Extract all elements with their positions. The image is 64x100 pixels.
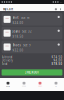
button[interactable]: CHECKOUT [2, 69, 62, 75]
staticText: Home [6, 85, 10, 87]
staticText: Size 32 [22, 30, 32, 33]
button[interactable]: Shop [16, 78, 32, 91]
staticText: Size 9 [23, 43, 31, 47]
button[interactable]: Jeans [2, 27, 62, 39]
staticText: 9:41 [59, 1, 62, 3]
button[interactable]: Me [48, 78, 64, 91]
staticText: Jeans [13, 30, 20, 33]
button[interactable]: Cart [32, 78, 48, 91]
staticText: Me [55, 85, 57, 87]
staticText: My Cart [3, 7, 13, 11]
staticText: Delivery [2, 59, 13, 62]
staticText: $78.50 [51, 62, 62, 66]
button[interactable]: Shirt [2, 13, 62, 26]
staticText: $18.50 [13, 35, 24, 38]
staticText: $32.00 [13, 49, 24, 52]
staticText: Size M [21, 16, 29, 19]
staticText: $24.00 [13, 21, 24, 25]
staticText: $74.50 [51, 55, 62, 59]
staticText: $4.00 [53, 59, 62, 62]
staticText: CHECKOUT [24, 71, 39, 74]
staticText: Cart [38, 85, 41, 87]
staticText: Shirt [13, 16, 19, 19]
staticText: Shop [22, 85, 26, 87]
staticText: Shoes [13, 43, 21, 47]
staticText: Subtotal [2, 55, 13, 59]
staticText: Total [2, 62, 8, 66]
button[interactable]: Shoes [2, 41, 62, 53]
button[interactable]: Home [0, 78, 16, 91]
